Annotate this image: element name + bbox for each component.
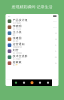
staticText: 昨天	[55, 38, 57, 40]
button[interactable]: 微信	[12, 79, 20, 86]
button[interactable]: 赵敏敏	[5, 60, 58, 66]
staticText: 周日	[55, 56, 57, 58]
staticText: 好的，下午三点见	[13, 28, 21, 30]
button[interactable]: 张建国	[5, 36, 58, 42]
staticText: 产品设计组	[13, 19, 28, 22]
button[interactable]: 刘芳	[5, 48, 58, 54]
button[interactable]: 产品设计组	[5, 18, 58, 24]
staticText: 技术交流群	[13, 55, 28, 58]
staticText: 在吗，方便打电话吗	[13, 52, 22, 54]
staticText: 9:41	[7, 15, 10, 17]
staticText: 周一	[55, 44, 57, 46]
staticText: 李晓明	[13, 25, 22, 28]
button[interactable]: 通讯录	[20, 79, 28, 86]
staticText: 收到，谢谢！	[13, 40, 19, 42]
staticText: 周一	[55, 50, 57, 52]
staticText: 昨天	[55, 32, 57, 34]
staticText: 09:32	[53, 20, 57, 22]
button[interactable]: 王小美	[5, 30, 58, 36]
staticText: 刚上传了新版原型	[13, 22, 21, 24]
staticText: 王小美	[13, 30, 22, 34]
button[interactable]: 李晓明	[5, 24, 58, 30]
staticText: 赵敏敏	[13, 61, 22, 64]
staticText: 本周数据周报已发布	[13, 46, 22, 48]
staticText: 09:10	[53, 26, 57, 28]
button[interactable]: 发现	[36, 79, 44, 86]
staticText: 运营通知	[13, 43, 25, 46]
staticText: 周六	[55, 62, 57, 64]
staticText: 刘芳	[13, 49, 19, 52]
button[interactable]: 发布	[28, 79, 36, 86]
staticText: 明白了 👌	[13, 64, 18, 66]
staticText: 陈工：已经修复了	[13, 58, 21, 60]
button[interactable]: 我	[44, 79, 52, 86]
staticText: 发现精彩瞬间 记录生活	[11, 4, 52, 9]
staticText: 张建国	[13, 37, 22, 40]
button[interactable]: 技术交流群	[5, 54, 58, 60]
staticText: [图片]	[13, 34, 15, 36]
button[interactable]: 运营通知	[5, 42, 58, 48]
